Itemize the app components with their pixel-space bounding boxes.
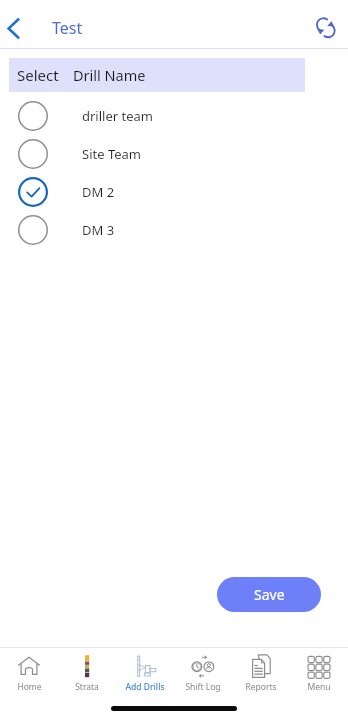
staticText: Save: [254, 585, 285, 604]
button[interactable]: Refresh: [307, 9, 345, 47]
staticText: Test: [52, 17, 83, 39]
staticText: DM 2: [82, 183, 115, 201]
staticText: Drill Name: [73, 65, 146, 85]
button[interactable]: Add Drills: [116, 648, 174, 694]
staticText: Add Drills: [125, 681, 165, 693]
button[interactable]: Save: [217, 577, 321, 612]
staticText: Site Team: [82, 145, 141, 163]
staticText: Home: [17, 681, 42, 693]
button[interactable]: DM 3: [0, 211, 348, 249]
button[interactable]: Menu: [290, 648, 348, 694]
button[interactable]: DM 2: [0, 173, 348, 211]
staticText: Menu: [307, 681, 331, 693]
staticText: Strata: [75, 681, 99, 693]
button[interactable]: Site Team: [0, 135, 348, 173]
staticText: Select: [17, 65, 59, 85]
button[interactable]: Home: [0, 648, 58, 694]
button[interactable]: Shift Log: [174, 648, 232, 694]
button[interactable]: Reports: [232, 648, 290, 694]
button[interactable]: driller team: [0, 97, 348, 135]
staticText: DM 3: [82, 221, 115, 239]
button[interactable]: Strata: [58, 648, 116, 694]
staticText: driller team: [82, 107, 153, 125]
button[interactable]: Back: [0, 6, 30, 50]
staticText: Shift Log: [185, 681, 221, 693]
staticText: Reports: [245, 681, 277, 693]
